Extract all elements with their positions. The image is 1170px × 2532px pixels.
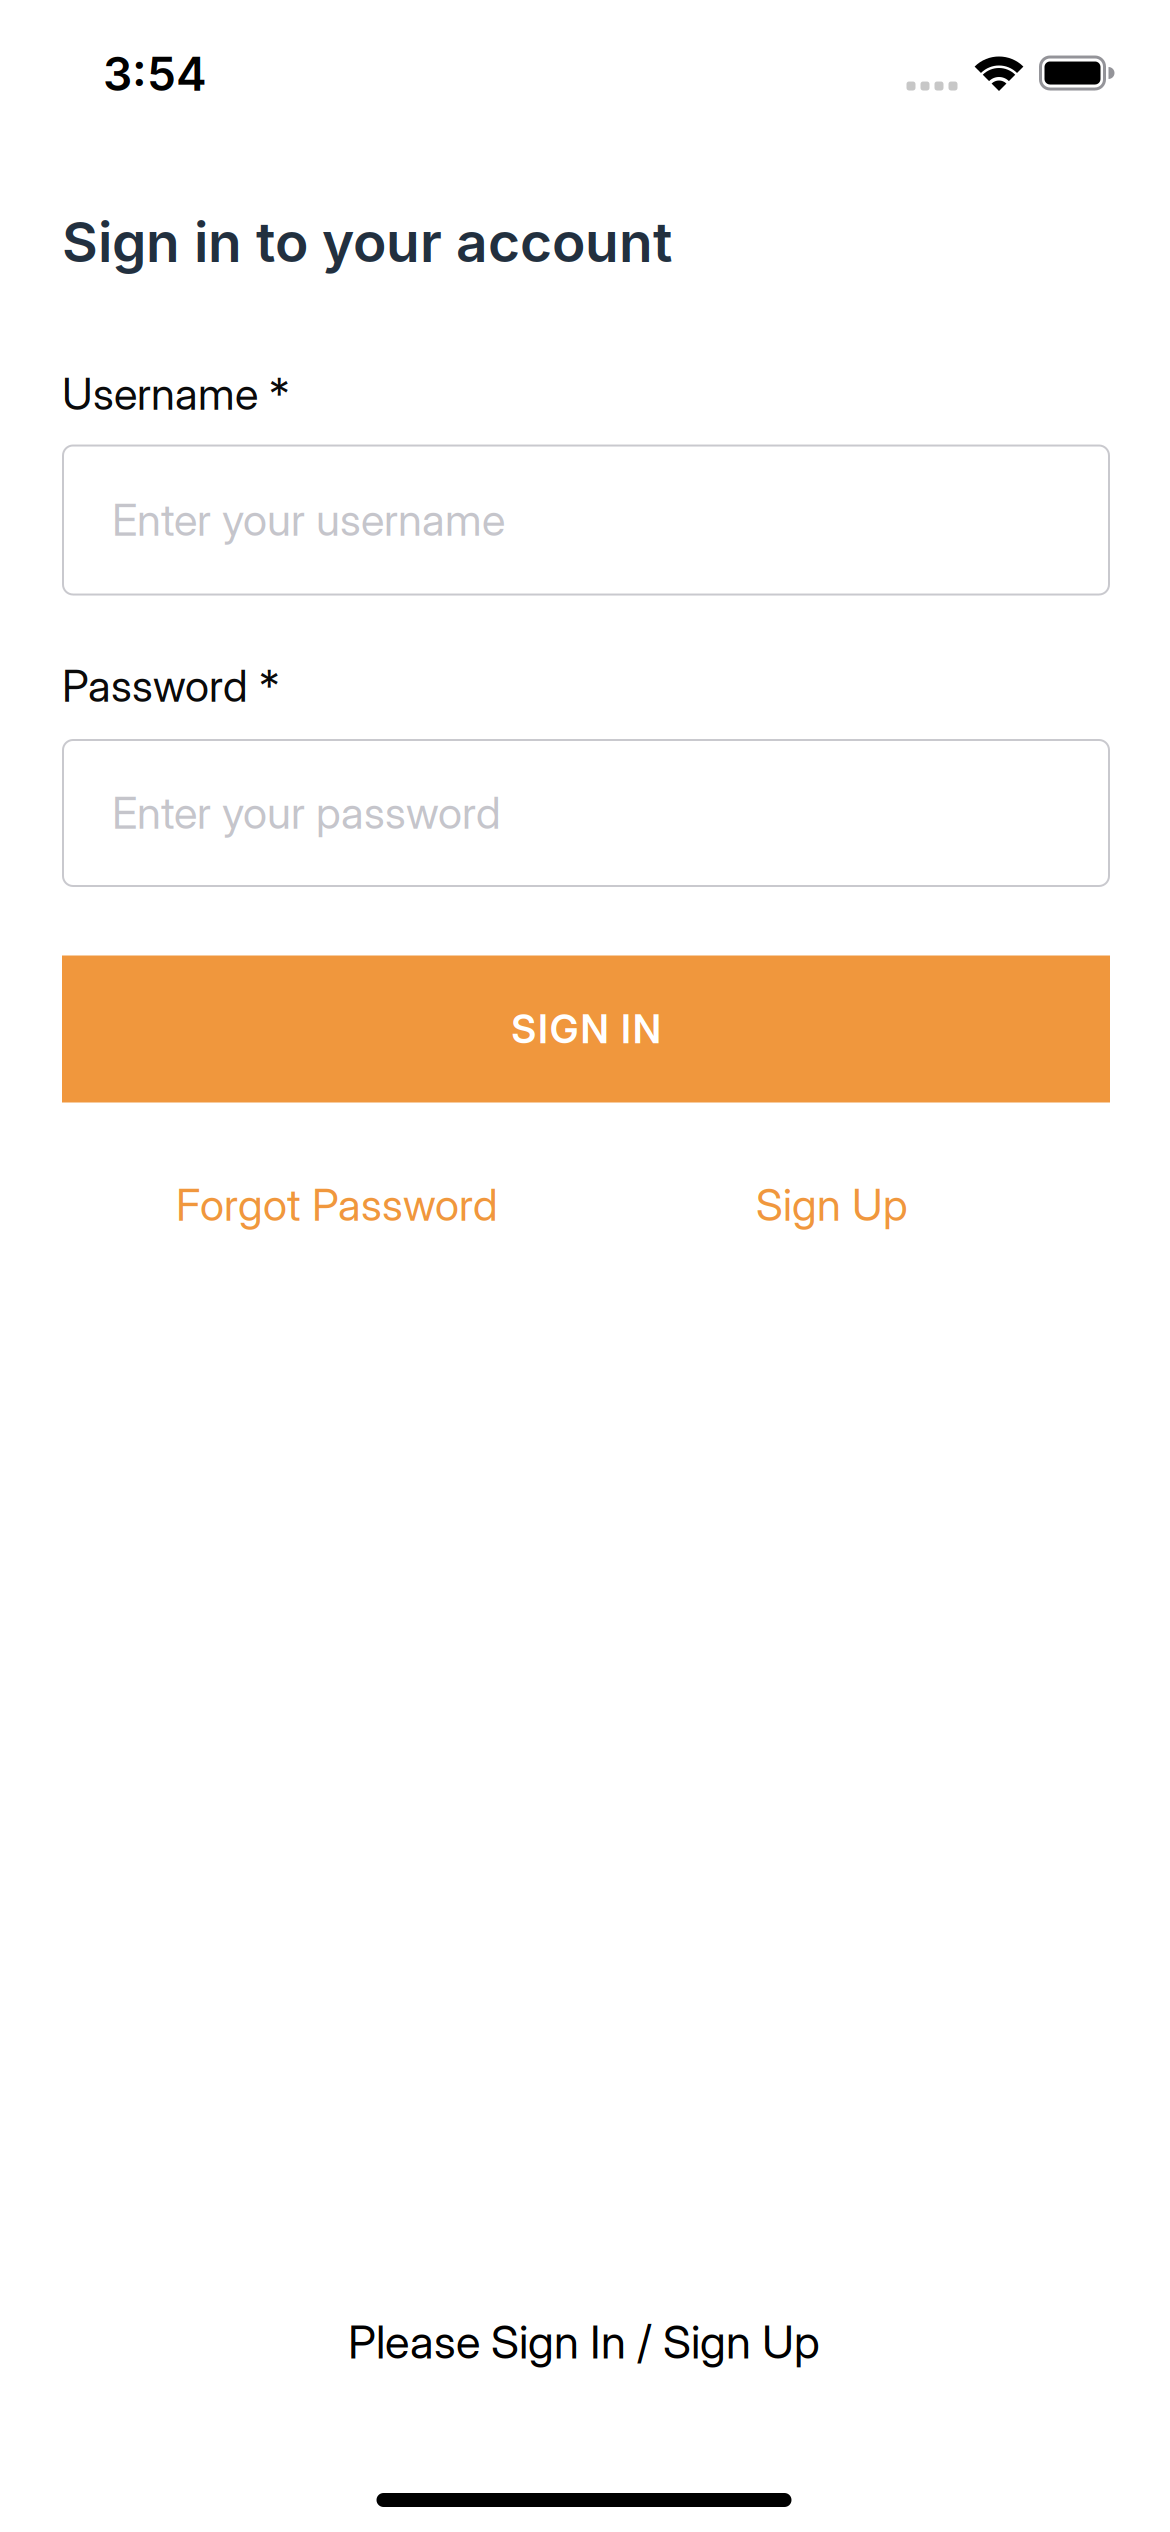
staticText: Enter your password xyxy=(112,787,501,839)
staticText: Password * xyxy=(62,660,279,712)
button[interactable]: Forgot Password xyxy=(176,1179,498,1231)
staticText: Username * xyxy=(62,368,289,420)
staticText: 3:54 xyxy=(103,46,207,102)
staticText: Sign in to your account xyxy=(62,209,672,275)
button[interactable]: Password text field xyxy=(62,739,1110,887)
staticText: SIGN IN xyxy=(511,1005,661,1053)
staticText: Please Sign In / Sign Up xyxy=(348,2314,820,2370)
button[interactable]: Username text field xyxy=(62,444,1110,595)
staticText: Forgot Password xyxy=(176,1179,498,1231)
button[interactable]: SIGN IN xyxy=(62,955,1110,1102)
staticText: Sign Up xyxy=(756,1179,908,1231)
button[interactable]: Sign Up xyxy=(756,1179,908,1231)
staticText: Enter your username xyxy=(112,494,505,546)
